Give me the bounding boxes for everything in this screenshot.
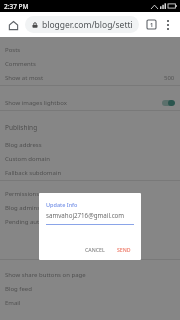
button[interactable]: Comments	[0, 57, 180, 71]
staticText: 500	[164, 74, 175, 82]
button[interactable]: Toggle	[162, 100, 175, 106]
button[interactable]: Blog admins and authors	[0, 201, 180, 215]
staticText: Blog address	[5, 141, 42, 149]
staticText: Update Info	[46, 201, 78, 208]
staticText: Blog admins and authors	[5, 204, 76, 212]
button[interactable]: Show share buttons on page	[0, 268, 180, 282]
staticText: Email	[5, 299, 21, 307]
button[interactable]: Tabs	[143, 16, 160, 33]
button[interactable]: Permissions	[0, 187, 180, 201]
button[interactable]: Home	[4, 16, 22, 34]
button[interactable]: Show images lightbox	[0, 96, 180, 110]
staticText: Fallback subdomain	[5, 169, 62, 177]
staticText: Comments	[5, 60, 36, 68]
button[interactable]: Email	[0, 296, 180, 310]
staticText: SEND	[117, 246, 131, 253]
button[interactable]: More options	[160, 17, 176, 33]
staticText: Blog feed	[5, 285, 32, 293]
staticText: Show images lightbox	[5, 99, 67, 107]
staticText: Show at most	[5, 74, 44, 82]
button[interactable]: SEND	[114, 244, 134, 255]
button[interactable]: blogger.com/blog/setti	[25, 16, 139, 33]
button[interactable]: Blog feed	[0, 282, 180, 296]
button[interactable]: Show at most	[0, 71, 180, 85]
button[interactable]: CANCEL	[82, 244, 108, 255]
staticText: samvahoj2716@gmail.com	[46, 211, 125, 219]
staticText: CANCEL	[85, 246, 105, 253]
staticText: Custom domain	[5, 155, 50, 163]
staticText: blogger.com/blog/setti	[42, 19, 133, 31]
button[interactable]: Fallback subdomain	[0, 166, 180, 180]
staticText: 1	[150, 21, 154, 28]
staticText: Pending author invites	[5, 218, 69, 226]
button[interactable]: Pending author invites	[0, 215, 180, 229]
button[interactable]: Blog address	[0, 138, 180, 152]
button[interactable]: Custom domain	[0, 152, 180, 166]
staticText: Publishing	[5, 123, 38, 132]
staticText: Posts	[5, 46, 21, 54]
staticText: 2:37 PM	[4, 2, 29, 11]
staticText: Show share buttons on page	[5, 271, 86, 279]
staticText: Permissions	[5, 190, 40, 198]
